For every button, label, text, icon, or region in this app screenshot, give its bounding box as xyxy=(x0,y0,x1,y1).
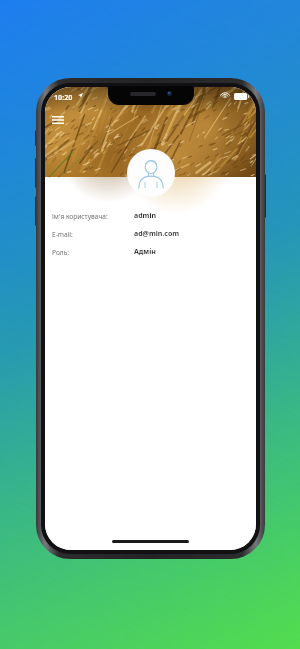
staticText: Роль: xyxy=(52,248,70,257)
button[interactable]: Menu xyxy=(48,112,68,128)
button[interactable]: Ім'я користувача: xyxy=(52,211,249,221)
button[interactable]: Роль: xyxy=(52,247,249,257)
staticText: admin xyxy=(134,211,157,221)
staticText: Адмін xyxy=(134,247,156,257)
button[interactable]: E-mail: xyxy=(52,229,249,239)
staticText: ad@min.com xyxy=(134,229,180,239)
staticText: Ім'я користувача: xyxy=(52,212,108,221)
staticText: E-mail: xyxy=(52,230,73,239)
button[interactable]: Profile avatar xyxy=(127,149,175,197)
staticText: 10:20 xyxy=(54,92,73,102)
